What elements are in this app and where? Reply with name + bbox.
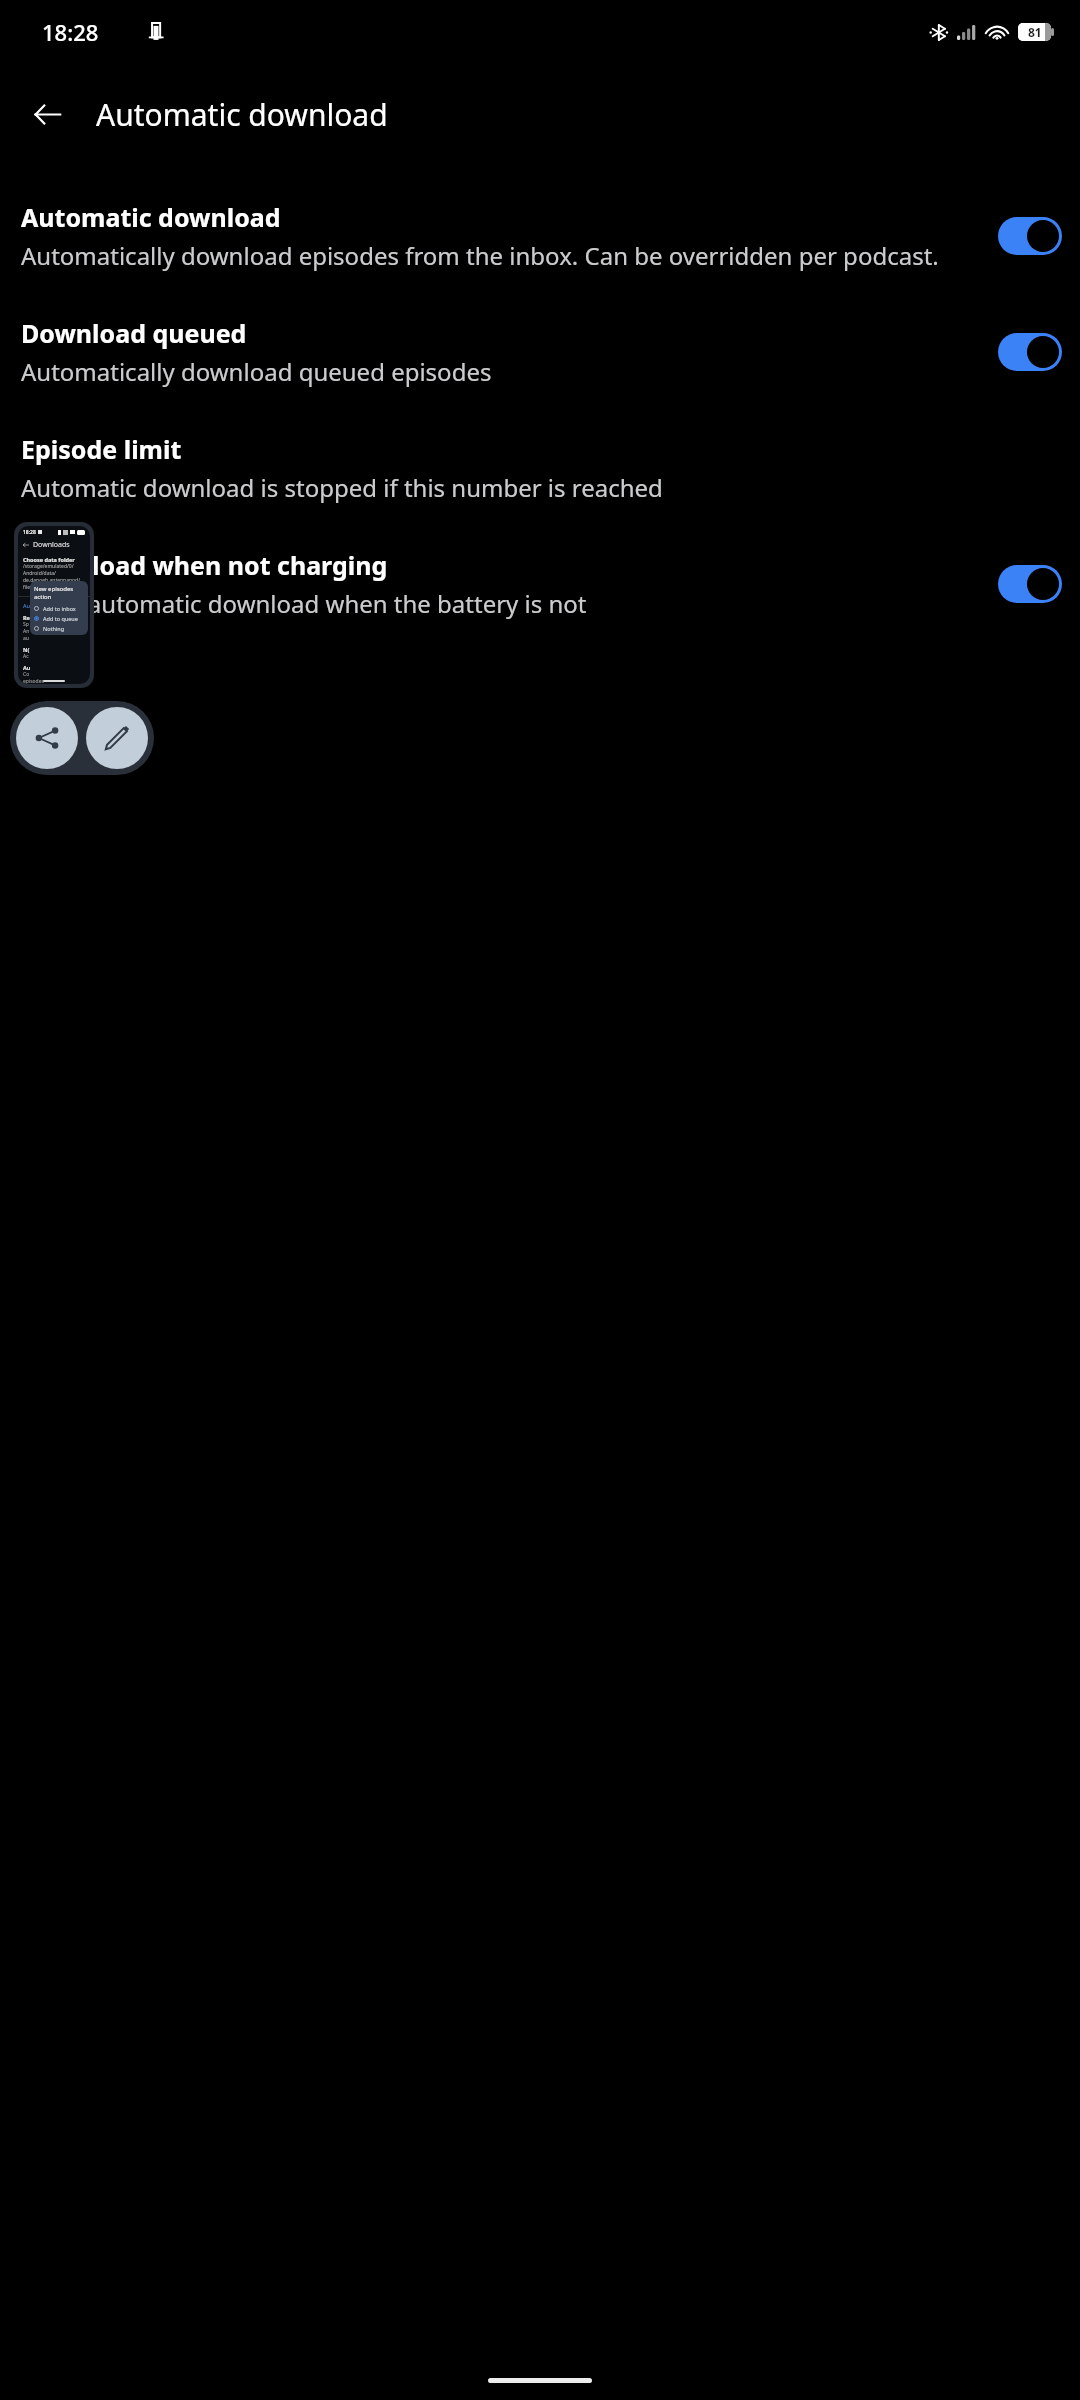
staticText: 18:28: [42, 17, 99, 47]
staticText: Episode limit: [21, 432, 182, 466]
button[interactable]: Download when not charging: [0, 542, 1080, 626]
staticText: Download when not charging: [21, 548, 388, 582]
staticText: Downloads: [33, 540, 70, 550]
staticText: 81: [1028, 24, 1042, 40]
staticText: Sp: [23, 621, 29, 628]
staticText: Automatically download episodes from the…: [21, 239, 939, 272]
staticText: Automatic download is stopped if this nu…: [21, 471, 663, 504]
staticText: New episodes action: [34, 585, 84, 601]
button[interactable]: Download when not charging: [998, 565, 1062, 603]
button[interactable]: Edit: [86, 707, 148, 769]
button[interactable]: 18:28: [18, 526, 90, 684]
staticText: Au: [23, 664, 31, 671]
staticText: /storage/emulated/0/Android/data/: [23, 563, 85, 577]
staticText: 18:28: [23, 529, 36, 536]
staticText: Choose data folder: [23, 556, 75, 563]
staticText: An: [23, 628, 30, 635]
button[interactable]: Automatic download: [0, 194, 1080, 278]
staticText: de.danoeh.antennapod/files: [23, 577, 85, 591]
staticText: Automatic download: [96, 94, 388, 135]
button[interactable]: Back: [18, 85, 76, 143]
staticText: Re: [23, 614, 30, 621]
staticText: Co: [23, 671, 30, 678]
button[interactable]: Download queued: [0, 310, 1080, 394]
staticText: au: [23, 635, 29, 642]
staticText: episodes: [23, 678, 44, 684]
staticText: Download queued: [21, 316, 247, 350]
staticText: Ac: [23, 653, 29, 660]
button[interactable]: Automatic download: [998, 217, 1062, 255]
staticText: Automatic download: [21, 200, 281, 234]
button[interactable]: Episode limit: [0, 426, 1080, 510]
staticText: Allow automatic download when the batter…: [21, 587, 587, 620]
button[interactable]: Share: [16, 707, 78, 769]
staticText: N(: [23, 646, 30, 653]
button[interactable]: Download queued: [998, 333, 1062, 371]
staticText: Add to queue: [43, 615, 78, 622]
staticText: Automation: [23, 602, 54, 609]
staticText: Nothing: [43, 625, 65, 632]
staticText: Add to inbox: [43, 605, 76, 612]
staticText: Automatically download queued episodes: [21, 355, 492, 388]
